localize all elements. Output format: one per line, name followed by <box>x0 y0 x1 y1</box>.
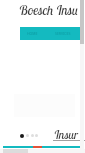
button[interactable]: HOME <box>20 27 45 40</box>
button[interactable]: Slide 2 <box>26 134 29 137</box>
button[interactable]: SERVICES <box>45 27 81 40</box>
button[interactable]: Slide 1 <box>20 134 24 138</box>
staticText: HOME <box>27 31 38 36</box>
button[interactable]: Slide 3 <box>31 134 34 137</box>
button[interactable]: Slide 4 <box>35 134 38 137</box>
staticText: Boesch Insu <box>19 2 79 18</box>
staticText: SERVICES <box>55 31 71 36</box>
staticText: Insur <box>54 127 79 142</box>
